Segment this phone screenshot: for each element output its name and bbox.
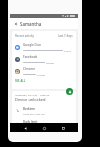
staticText: Facebook bbox=[23, 55, 38, 59]
staticText: Daily limit bbox=[23, 120, 38, 124]
button[interactable]: Add bbox=[66, 88, 73, 95]
staticText: 3 hr 0 min bbox=[23, 125, 35, 128]
button[interactable]: SEE ALL bbox=[15, 78, 26, 84]
staticText: Google Duo bbox=[23, 43, 41, 47]
button[interactable]: Back bbox=[21, 124, 29, 132]
staticText: Samantha bbox=[20, 21, 42, 27]
button[interactable]: Chrome bbox=[15, 65, 73, 77]
staticText: Last 7 days bbox=[58, 34, 73, 38]
button[interactable]: Recents bbox=[59, 124, 67, 132]
staticText: 10:00 PM - 7:00 AM bbox=[23, 112, 45, 115]
staticText: 31 min bbox=[37, 73, 46, 76]
button[interactable]: Bedtime bbox=[15, 104, 73, 117]
staticText: Yesterday, 9:41 PM · Pixel 4a bbox=[15, 93, 50, 96]
button[interactable]: Back bbox=[13, 21, 19, 27]
button[interactable]: Google Duo bbox=[15, 41, 73, 53]
staticText: SEE ALL bbox=[15, 79, 26, 83]
staticText: 2 hr 9 min bbox=[64, 49, 73, 52]
staticText: 54 min bbox=[46, 61, 55, 64]
staticText: Device unlocked bbox=[15, 97, 46, 102]
staticText: Chrome bbox=[23, 67, 35, 71]
button[interactable]: Daily limit bbox=[15, 117, 73, 130]
staticText: Bedtime bbox=[23, 107, 36, 111]
button[interactable]: Facebook bbox=[15, 53, 73, 65]
staticText: Recent activity bbox=[15, 34, 34, 38]
button[interactable]: Home bbox=[40, 124, 48, 132]
